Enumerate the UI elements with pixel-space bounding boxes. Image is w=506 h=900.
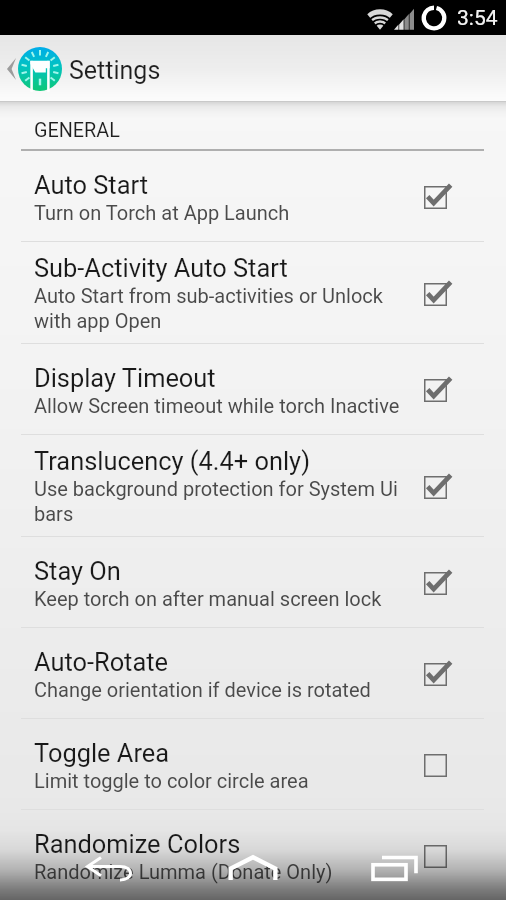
staticText: Auto-Rotate (34, 647, 168, 677)
button[interactable]: Stay On (0, 537, 506, 627)
staticText: Allow Screen timeout while torch Inactiv… (34, 394, 400, 417)
staticText: Auto Start from sub-activities or Unlock… (34, 284, 383, 333)
button[interactable]: Back (70, 840, 150, 896)
staticText: Randomize Lumma (Donate Only) (34, 860, 333, 883)
button[interactable]: Display Timeout (0, 344, 506, 434)
staticText: Translucency (4.4+ only) (34, 446, 310, 476)
staticText: Auto Start (34, 170, 148, 200)
staticText: GENERAL (34, 119, 120, 142)
button[interactable]: Auto Start (0, 151, 506, 241)
button[interactable]: Recents (355, 839, 435, 895)
staticText: Settings (69, 56, 161, 85)
staticText: 3:54 (457, 6, 498, 31)
staticText: Toggle Area (34, 738, 170, 768)
staticText: Sub-Activity Auto Start (34, 253, 288, 283)
staticText: Limit toggle to color circle area (34, 769, 309, 792)
staticText: Stay On (34, 556, 121, 586)
button[interactable]: Auto-Rotate (0, 628, 506, 718)
staticText: Change orientation if device is rotated (34, 678, 371, 701)
staticText: Randomize Colors (34, 829, 241, 859)
button[interactable]: Sub-Activity Auto Start (0, 242, 506, 343)
button[interactable]: Translucency (4.4+ only) (0, 435, 506, 536)
button[interactable]: Randomize Colors (0, 810, 506, 900)
staticText: Use background protection for System Ui … (34, 477, 398, 526)
staticText: Display Timeout (34, 363, 216, 393)
staticText: Keep torch on after manual screen lock (34, 587, 382, 610)
staticText: Turn on Torch at App Launch (34, 201, 290, 224)
button[interactable]: Settings (0, 35, 506, 102)
button[interactable]: Home (213, 839, 293, 895)
button[interactable]: Toggle Area (0, 719, 506, 809)
